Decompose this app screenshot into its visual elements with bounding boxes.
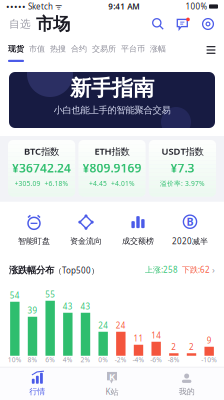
staticText: ETH指数 bbox=[94, 145, 129, 157]
staticText: K站 bbox=[105, 386, 118, 397]
staticText: 热搜 bbox=[50, 44, 66, 54]
button[interactable]: Messages bbox=[165, 17, 190, 31]
staticText: 市值 bbox=[29, 44, 45, 54]
staticText: 涨幅 bbox=[150, 44, 166, 54]
staticText: +305.09 +6.18% bbox=[15, 179, 69, 188]
staticText: BTC指数 bbox=[24, 145, 59, 157]
staticText: 14 bbox=[151, 330, 161, 341]
button[interactable]: 合约 bbox=[66, 44, 87, 54]
staticText: 小白也能上手的智能聚合交易 bbox=[53, 104, 170, 116]
staticText: 8% bbox=[27, 355, 37, 364]
staticText: USDT指数 bbox=[161, 145, 203, 157]
staticText: ᯤ bbox=[53, 1, 62, 12]
button[interactable]: Settings bbox=[190, 17, 215, 31]
button[interactable]: K bbox=[75, 371, 149, 397]
staticText: 54 bbox=[10, 290, 20, 301]
staticText: B bbox=[186, 215, 193, 229]
staticText: 11 bbox=[133, 333, 143, 344]
button[interactable]: More categories bbox=[202, 44, 216, 55]
staticText: 合约 bbox=[71, 44, 87, 54]
staticText: -2% bbox=[115, 355, 127, 364]
button[interactable]: 上涨:258 bbox=[145, 263, 215, 276]
staticText: 市场 bbox=[36, 13, 70, 35]
button[interactable]: 热搜 bbox=[45, 44, 66, 54]
staticText: 2 bbox=[171, 342, 176, 352]
staticText: 10% bbox=[8, 355, 22, 364]
button[interactable]: 资金流向 bbox=[60, 213, 112, 246]
staticText: 下跌:62 bbox=[178, 264, 210, 275]
staticText: -8% bbox=[168, 355, 180, 364]
button[interactable]: 市值 bbox=[24, 44, 45, 54]
staticText: 我的 bbox=[179, 387, 195, 397]
staticText: ¥809.9169 bbox=[82, 160, 141, 176]
button[interactable]: ETH指数 bbox=[78, 140, 146, 197]
button[interactable]: 我的 bbox=[149, 372, 224, 397]
staticText: 自选 bbox=[9, 17, 31, 30]
staticText: Sketch bbox=[26, 1, 53, 12]
staticText: 溢价率: 3.97% bbox=[160, 179, 205, 188]
staticText: 新手指南 bbox=[70, 75, 154, 101]
staticText: 100% bbox=[185, 1, 207, 12]
button[interactable]: B bbox=[164, 213, 216, 246]
staticText: 涨跌幅分布 bbox=[9, 264, 54, 276]
staticText: 行情 bbox=[29, 387, 45, 397]
staticText: 2020减半 bbox=[172, 236, 208, 246]
staticText: 24 bbox=[98, 320, 108, 331]
staticText: 0% bbox=[98, 355, 108, 364]
button[interactable]: 平台币 bbox=[116, 44, 145, 54]
staticText: 43 bbox=[63, 301, 73, 312]
staticText: -10% bbox=[201, 355, 217, 364]
button[interactable]: 现货 bbox=[8, 44, 24, 62]
staticText: 43 bbox=[80, 301, 90, 312]
staticText: -4% bbox=[132, 355, 144, 364]
button[interactable]: BTC指数 bbox=[8, 140, 75, 197]
staticText: 交易所 bbox=[92, 44, 116, 54]
staticText: › bbox=[210, 263, 215, 276]
button[interactable]: Search bbox=[151, 17, 165, 31]
staticText: 55 bbox=[45, 289, 55, 300]
staticText: 4% bbox=[63, 355, 73, 364]
button[interactable]: 市场 bbox=[31, 13, 70, 35]
button[interactable]: 智能盯盘 bbox=[8, 213, 60, 246]
staticText: 成交额榜 bbox=[122, 236, 154, 246]
staticText: 现货 bbox=[8, 44, 24, 54]
staticText: 39 bbox=[27, 305, 37, 316]
staticText: 6% bbox=[45, 355, 55, 364]
staticText: -6% bbox=[150, 355, 162, 364]
button[interactable]: 自选 bbox=[9, 17, 31, 30]
staticText: 资金流向 bbox=[70, 236, 102, 246]
staticText: 9:41 AM bbox=[108, 1, 139, 12]
staticText: （Top500） bbox=[54, 265, 99, 276]
staticText: +4.45 +4.01% bbox=[89, 179, 135, 188]
staticText: 2% bbox=[80, 355, 90, 364]
button[interactable]: USDT指数 bbox=[149, 140, 216, 197]
button[interactable]: 成交额榜 bbox=[112, 213, 164, 246]
button[interactable]: 行情 bbox=[0, 372, 75, 397]
staticText: 上涨:258 bbox=[145, 264, 178, 275]
staticText: ¥36742.24 bbox=[12, 160, 71, 176]
button[interactable]: 涨幅 bbox=[145, 44, 166, 54]
staticText: 2 bbox=[189, 342, 194, 352]
staticText: 9 bbox=[207, 335, 212, 346]
staticText: K bbox=[109, 370, 115, 383]
staticText: 平台币 bbox=[121, 44, 145, 54]
staticText: 24 bbox=[116, 320, 126, 331]
button[interactable]: 新手指南 bbox=[0, 72, 224, 128]
staticText: 智能盯盘 bbox=[18, 236, 50, 246]
staticText: ¥7.3 bbox=[170, 160, 194, 176]
staticText: ••••• bbox=[6, 0, 26, 13]
button[interactable]: 交易所 bbox=[87, 44, 116, 54]
